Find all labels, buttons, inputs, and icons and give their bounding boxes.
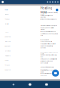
staticText: est laborum sed ut perspiciatis bbox=[40, 60, 52, 64]
staticText: Heading copy bbox=[40, 6, 52, 13]
staticText: Today bbox=[5, 18, 10, 20]
button[interactable]: Info bbox=[54, 0, 57, 4]
button[interactable]: More bbox=[43, 81, 49, 88]
staticText: Folders bbox=[5, 55, 11, 57]
staticText: Excepteur sint occaecat cupid bbox=[40, 51, 57, 55]
staticText: Tags bbox=[5, 60, 9, 61]
button[interactable]: App menu bbox=[0, 0, 5, 4]
staticText: officia deserunt mollit anim id bbox=[40, 58, 57, 60]
staticText: Ut enim ad minim veniam, quis bbox=[40, 25, 57, 26]
staticText: Lorem ipsum dolor sit amet, cons bbox=[40, 11, 57, 15]
button[interactable]: Back bbox=[10, 81, 16, 88]
button[interactable]: Today bbox=[5, 18, 10, 20]
button[interactable]: Archive bbox=[5, 50, 11, 52]
button[interactable]: Add bbox=[51, 0, 54, 4]
staticText: Trash bbox=[5, 64, 10, 66]
staticText: nostrud exercitation ullamco bbox=[40, 27, 54, 30]
staticText: Drafts bbox=[5, 23, 9, 25]
button[interactable]: More bbox=[57, 0, 59, 4]
staticText: Archive bbox=[5, 50, 11, 52]
staticText: voluptate velit esse cillum bbox=[40, 43, 55, 45]
button[interactable]: Search bbox=[46, 0, 49, 4]
staticText: non proident, sunt in culpa qui bbox=[40, 54, 57, 58]
staticText: tempor incididunt ut labore bbox=[40, 18, 57, 20]
staticText: laudantium totam rem aperiam bbox=[40, 72, 53, 76]
button[interactable]: Shared bbox=[5, 36, 11, 38]
button[interactable]: Drafts bbox=[5, 23, 9, 25]
button[interactable]: Library bbox=[27, 81, 33, 88]
button[interactable]: Trash bbox=[5, 64, 10, 66]
staticText: Recent bbox=[5, 45, 10, 47]
button[interactable]: Notes bbox=[5, 31, 9, 33]
staticText: Inbox bbox=[5, 13, 9, 15]
button[interactable]: Share bbox=[49, 0, 51, 4]
button[interactable]: Folders bbox=[5, 55, 11, 57]
staticText: Irure dolor in reprehenderit in bbox=[40, 39, 52, 42]
staticText: Notes bbox=[5, 31, 9, 33]
button[interactable]: Compose bbox=[52, 70, 59, 77]
staticText: dolore eu fugiat nulla pariatur bbox=[40, 45, 53, 48]
staticText: adipiscing elit, sed do eiusmod bbox=[40, 14, 53, 18]
staticText: laboris nisi ut aliquip ex ea bbox=[40, 31, 56, 32]
button[interactable]: Inbox bbox=[5, 13, 9, 15]
staticText: commodo consequat duis aute bbox=[40, 33, 58, 36]
staticText: Starred bbox=[5, 41, 11, 42]
staticText: Shared bbox=[5, 36, 11, 38]
button[interactable]: Starred bbox=[5, 40, 11, 42]
button[interactable]: Tags bbox=[5, 59, 9, 61]
button[interactable]: Recent bbox=[5, 45, 10, 47]
staticText: voluptatem accusantium dolor bbox=[40, 69, 56, 73]
button[interactable]: New bbox=[5, 9, 8, 11]
staticText: Search bbox=[5, 69, 11, 71]
staticText: New bbox=[5, 9, 8, 11]
button[interactable]: Search bbox=[5, 69, 11, 71]
staticText: Unde omnis iste natus error sit bbox=[40, 66, 54, 70]
